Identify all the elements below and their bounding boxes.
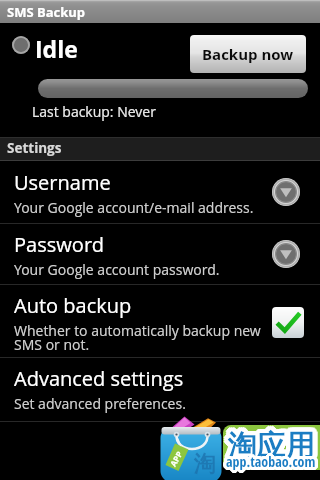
staticText: 淘应用 <box>228 427 315 464</box>
staticText: 淘应用 <box>232 425 319 462</box>
staticText: app.taobao.com <box>227 455 317 474</box>
staticText: app.taobao.com <box>223 451 313 470</box>
staticText: app.taobao.com <box>225 449 315 468</box>
staticText: Whether to automatically backup new SMS … <box>14 321 261 354</box>
staticText: app.taobao.com <box>228 454 318 473</box>
staticText: Advanced settings <box>14 365 184 392</box>
staticText: Your Google account/e-mail address. <box>14 198 254 217</box>
button[interactable]: Open setting <box>272 240 300 268</box>
staticText: app.taobao.com <box>228 450 318 469</box>
staticText: 淘应用 <box>224 427 311 464</box>
staticText: 淘应用 <box>226 431 313 468</box>
staticText: Set advanced preferences. <box>14 394 186 413</box>
staticText: Settings <box>7 139 62 157</box>
staticText: 淘应用 <box>226 423 313 460</box>
staticText: 淘应用 <box>232 429 319 466</box>
staticText: Backup now <box>202 44 294 64</box>
staticText: 淘应用 <box>231 424 318 461</box>
staticText: 淘应用 <box>230 431 317 468</box>
staticText: app.taobao.com <box>229 452 319 471</box>
staticText: 淘应用 <box>231 430 318 467</box>
button[interactable]: Auto backup toggle <box>272 307 304 338</box>
button[interactable]: Password <box>0 223 320 284</box>
staticText: 淘应用 <box>225 430 312 467</box>
button[interactable]: Advanced settings <box>0 357 320 421</box>
staticText: Username <box>14 169 111 196</box>
staticText: 淘 <box>194 450 216 478</box>
button[interactable]: Auto backup <box>0 284 320 357</box>
staticText: app.taobao.com <box>226 449 316 468</box>
staticText: app.taobao.com <box>224 454 314 473</box>
staticText: app.taobao.com <box>223 453 313 472</box>
staticText: 淘应用 <box>228 432 315 469</box>
button[interactable]: Username <box>0 161 320 223</box>
staticText: 淘应用 <box>225 424 312 461</box>
staticText: APP <box>167 449 185 468</box>
staticText: app.taobao.com <box>226 452 316 471</box>
staticText: 淘应用 <box>224 425 311 462</box>
staticText: Password <box>14 231 104 258</box>
staticText: Idle <box>35 33 78 64</box>
staticText: 淘应用 <box>233 427 320 464</box>
staticText: app.taobao.com <box>223 452 313 471</box>
staticText: app.taobao.com <box>229 451 319 470</box>
button[interactable]: Backup now <box>190 35 306 73</box>
button[interactable]: Open setting <box>272 178 300 206</box>
staticText: 淘应用 <box>224 429 311 466</box>
staticText: 淘应用 <box>230 423 317 460</box>
staticText: Your Google account password. <box>14 260 220 279</box>
staticText: app.taobao.com <box>224 450 314 469</box>
staticText: Last backup: Never <box>32 102 156 121</box>
staticText: Auto backup <box>14 292 132 319</box>
staticText: app.taobao.com <box>227 449 317 468</box>
staticText: 淘应用 <box>228 423 315 460</box>
staticText: app.taobao.com <box>229 453 319 472</box>
staticText: app.taobao.com <box>225 455 315 474</box>
staticText: app.taobao.com <box>226 455 316 474</box>
staticText: SMS Backup <box>7 3 86 21</box>
